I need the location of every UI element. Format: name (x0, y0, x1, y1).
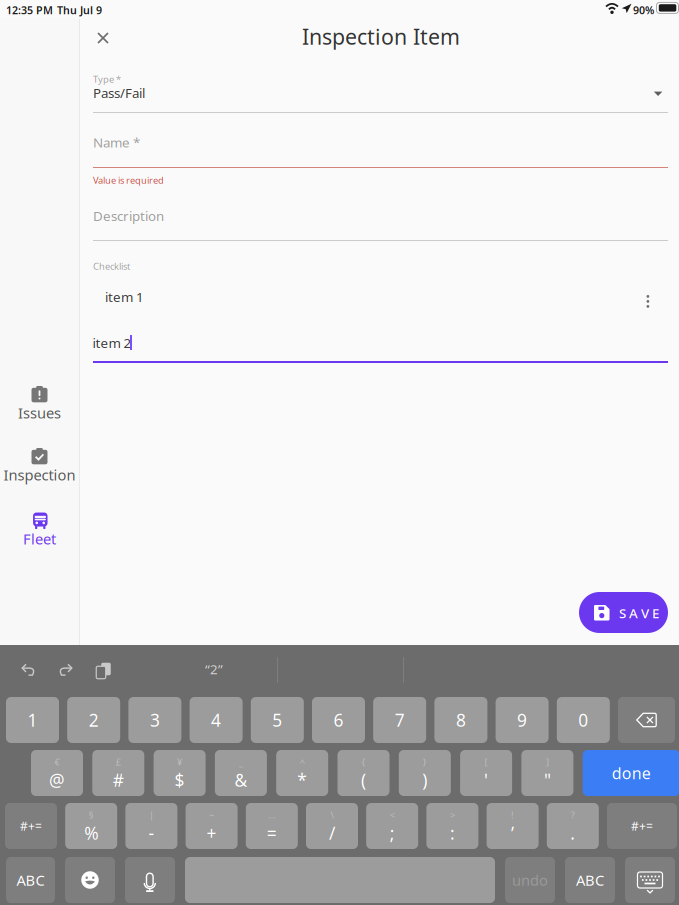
button[interactable]: ABC (6, 857, 55, 903)
staticText: > (450, 809, 455, 821)
button[interactable]: Inspection (0, 447, 79, 483)
button[interactable]: ? (547, 803, 599, 849)
staticText: Pass/Fail (93, 84, 145, 102)
staticText: _ (239, 756, 243, 768)
staticText: 12:35 PM (6, 3, 53, 17)
button[interactable]: } (399, 750, 451, 796)
staticText: Description (93, 207, 164, 225)
staticText: . (570, 821, 575, 844)
staticText: Inspection Item (302, 22, 460, 51)
button[interactable]: 3 (128, 697, 181, 743)
staticText: ] (546, 756, 549, 768)
button[interactable]: | (125, 803, 177, 849)
button[interactable]: ^ (276, 750, 328, 796)
button[interactable]: ! (487, 803, 539, 849)
staticText: 9 (517, 708, 527, 731)
button[interactable]: £ (92, 750, 144, 796)
staticText: ABC (16, 870, 44, 890)
button[interactable]: 5 (251, 697, 304, 743)
button[interactable]: Issues (0, 385, 79, 421)
staticText: & (234, 768, 247, 791)
staticText: ; (390, 821, 395, 844)
staticText: ^ (300, 756, 305, 768)
button[interactable]: < (366, 803, 418, 849)
staticText: “2” (205, 660, 223, 678)
button[interactable]: _ (215, 750, 267, 796)
staticText: 0 (578, 708, 588, 731)
staticText: € (54, 756, 59, 768)
button[interactable]: Delete (618, 697, 675, 743)
staticText: = (267, 821, 277, 844)
staticText: < (390, 809, 395, 821)
staticText: | (149, 809, 154, 821)
staticText: # (113, 768, 124, 791)
button[interactable]: Fleet (0, 511, 79, 547)
button[interactable]: Undo (14, 657, 44, 683)
staticText: 2 (89, 708, 99, 731)
button[interactable]: ~ (186, 803, 238, 849)
button[interactable]: Redo (50, 657, 80, 683)
staticText: 90% (633, 3, 654, 17)
button[interactable]: 0 (557, 697, 610, 743)
button[interactable]: #+= (5, 803, 57, 849)
staticText: @ (49, 768, 65, 791)
staticText: Thu Jul 9 (57, 3, 102, 17)
button[interactable]: > (426, 803, 478, 849)
button[interactable]: 4 (190, 697, 243, 743)
staticText: } (423, 756, 427, 768)
staticText: ( (361, 768, 366, 791)
button[interactable]: done (583, 750, 679, 796)
staticText: 1 (27, 708, 37, 731)
button[interactable]: 8 (434, 697, 487, 743)
staticText: Value is required (93, 174, 164, 186)
button[interactable]: 6 (312, 697, 365, 743)
staticText: ! (511, 809, 514, 821)
button[interactable]: 7 (373, 697, 426, 743)
button[interactable]: 9 (496, 697, 549, 743)
button[interactable]: ] (521, 750, 573, 796)
button[interactable]: 2 (67, 697, 120, 743)
staticText: #+= (20, 818, 42, 834)
staticText: Issues (18, 403, 61, 422)
staticText: undo (512, 870, 548, 890)
staticText: 4 (211, 708, 221, 731)
staticText: 7 (395, 708, 405, 731)
staticText: - (148, 821, 154, 844)
button[interactable]: Dictation (125, 857, 175, 903)
button[interactable]: ABC (565, 857, 615, 903)
staticText: * (297, 768, 307, 791)
staticText: item 1 (105, 288, 144, 306)
staticText: ¥ (177, 756, 182, 768)
staticText: Inspection (3, 465, 75, 484)
button[interactable]: [ (460, 750, 512, 796)
staticText: \ (330, 809, 333, 821)
button[interactable]: Emoji (65, 857, 115, 903)
staticText: Fleet (23, 529, 56, 548)
button[interactable]: Close (85, 20, 121, 56)
staticText: #+= (631, 818, 653, 834)
button[interactable]: ¥ (154, 750, 206, 796)
staticText: item 2 (92, 334, 131, 352)
button[interactable]: Paste (86, 656, 116, 682)
button[interactable]: { (337, 750, 389, 796)
staticText: ~ (209, 809, 214, 821)
staticText: Name * (93, 133, 140, 151)
staticText: / (329, 821, 335, 844)
staticText: 5 (272, 708, 282, 731)
button[interactable]: … (246, 803, 298, 849)
staticText: [ (485, 756, 488, 768)
staticText: § (89, 809, 94, 821)
button[interactable]: 1 (6, 697, 59, 743)
staticText: : (450, 821, 455, 844)
button[interactable]: Hide keyboard (625, 857, 675, 903)
staticText: ' (484, 768, 488, 791)
button[interactable]: undo (505, 857, 555, 903)
staticText: { (361, 756, 365, 768)
button[interactable]: #+= (607, 803, 677, 849)
staticText: 3 (150, 708, 160, 731)
button[interactable]: S A V E (579, 592, 668, 633)
button[interactable]: § (65, 803, 117, 849)
button[interactable]: \ (306, 803, 358, 849)
button[interactable]: € (31, 750, 83, 796)
